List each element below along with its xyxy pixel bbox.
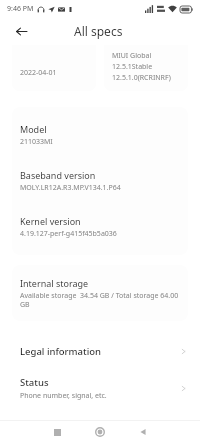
button[interactable]: Status: [0, 374, 200, 403]
staticText: Kernel version: [20, 215, 81, 227]
button[interactable]: 2022-04-01: [12, 45, 96, 91]
button[interactable]: MIUI Global: [104, 45, 188, 91]
button[interactable]: Recent apps: [43, 420, 71, 444]
staticText: Phone number, signal, etc.: [20, 391, 107, 401]
staticText: 4.19.127-perf-g415f45b5a036: [20, 229, 117, 239]
staticText: Status: [20, 376, 49, 389]
staticText: Available storage 34.54 GB / Total stora…: [20, 291, 180, 309]
staticText: All specs: [74, 23, 123, 39]
staticText: 2022-04-01: [20, 68, 57, 78]
button[interactable]: Legal information: [0, 343, 200, 360]
staticText: Baseband version: [20, 169, 96, 181]
button[interactable]: Internal storage: [12, 265, 188, 321]
staticText: Internal storage: [20, 277, 89, 289]
staticText: 9:46 PM: [7, 4, 34, 14]
button[interactable]: Home: [86, 420, 114, 444]
staticText: Model: [20, 123, 47, 135]
staticText: 12.5.1Stable: [112, 62, 153, 72]
button[interactable]: Model: [12, 107, 188, 255]
staticText: Legal information: [20, 345, 102, 358]
staticText: MOLY.LR12A.R3.MP.V134.1.P64: [20, 183, 121, 193]
staticText: MIUI Global: [112, 51, 152, 61]
staticText: 12.5.1.0(RCRINRF): [112, 73, 171, 83]
button[interactable]: Back: [10, 20, 32, 42]
staticText: 211033MI: [20, 137, 53, 147]
button[interactable]: Back: [129, 420, 157, 444]
